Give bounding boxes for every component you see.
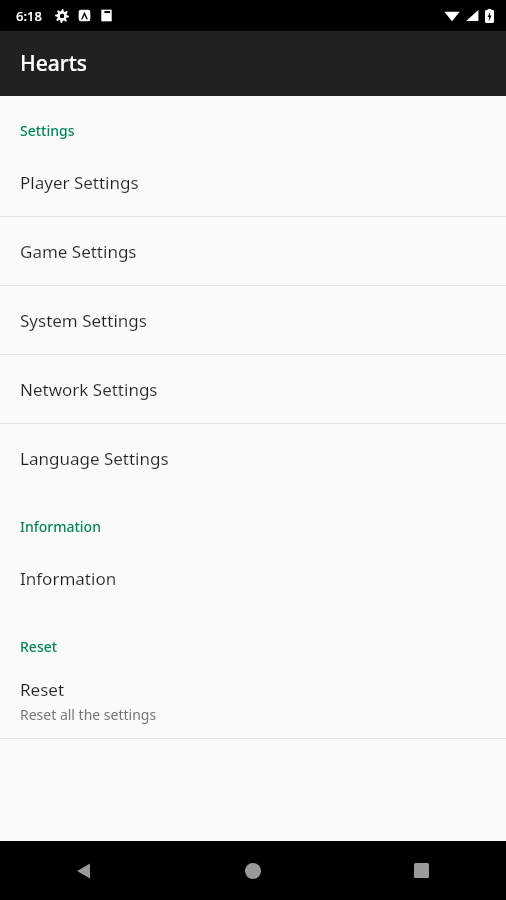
staticText: Hearts [20,49,87,78]
staticText: Language Settings [20,447,169,470]
button[interactable]: Recent apps [337,841,506,900]
staticText: Reset [20,637,58,656]
button[interactable]: Player Settings [0,148,506,216]
button[interactable]: Back [0,841,168,900]
staticText: Information [20,567,117,590]
button[interactable]: Home [168,841,337,900]
staticText: Information [20,517,101,536]
staticText: Reset all the settings [20,705,157,724]
staticText: System Settings [20,309,147,332]
button[interactable]: Information [0,544,506,612]
staticText: Reset [20,678,65,701]
staticText: Network Settings [20,378,158,401]
button[interactable]: System Settings [0,286,506,354]
staticText: Game Settings [20,240,137,263]
staticText: Settings [20,121,75,140]
button[interactable]: Reset [0,664,506,738]
button[interactable]: Language Settings [0,424,506,492]
button[interactable]: Game Settings [0,217,506,285]
staticText: Player Settings [20,171,139,194]
button[interactable]: Network Settings [0,355,506,423]
staticText: 6:18 [16,7,42,25]
